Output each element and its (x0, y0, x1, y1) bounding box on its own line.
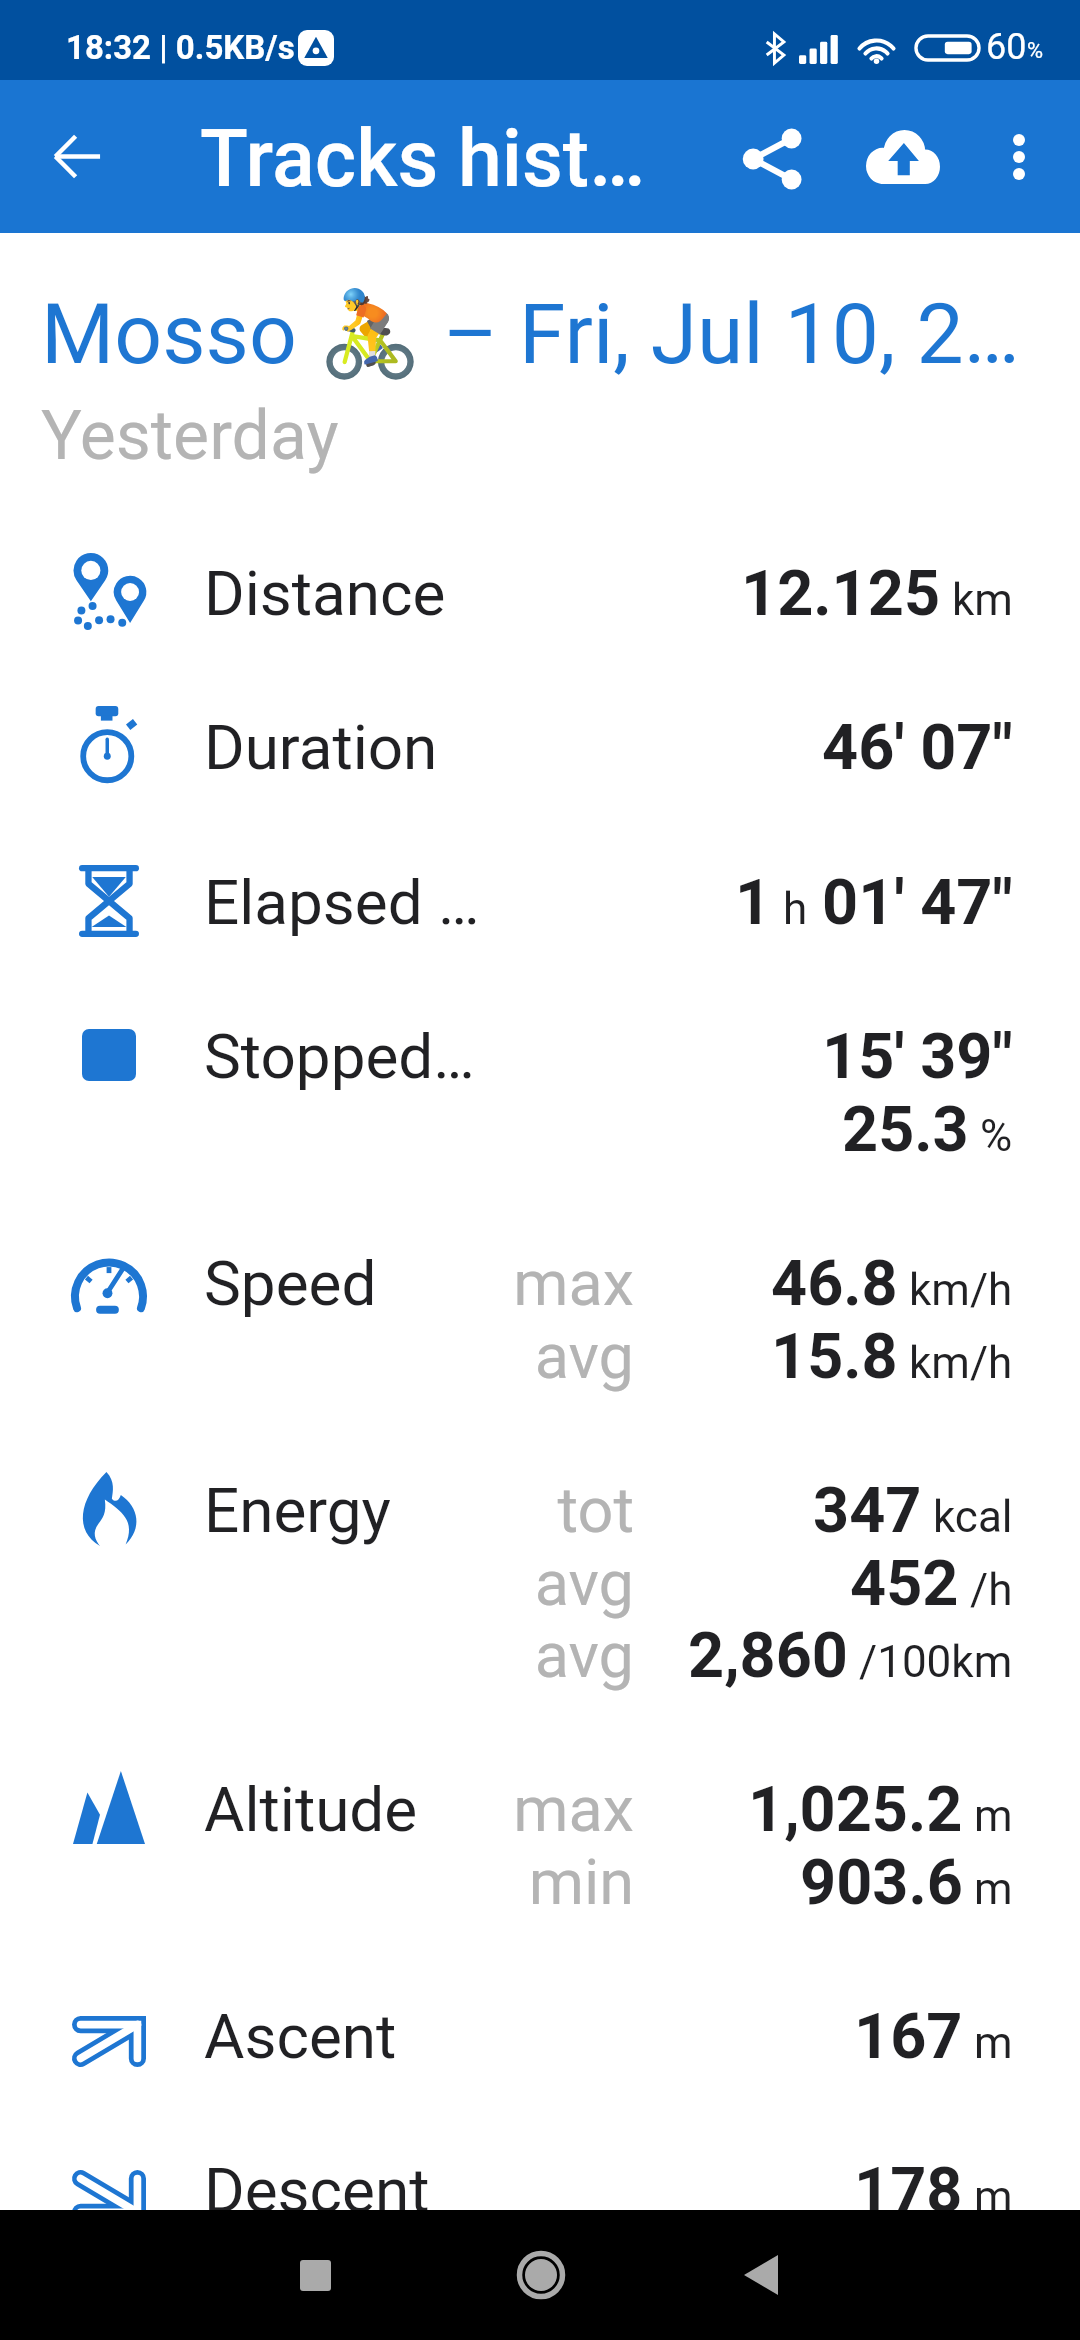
staticText: /100km (859, 1636, 1013, 1688)
button[interactable]: Elapsed … (0, 865, 1080, 1019)
staticText: km (952, 574, 1013, 626)
staticText: 12.125 (741, 557, 941, 631)
button[interactable]: Speed (0, 1246, 1080, 1473)
button[interactable]: Recent apps (240, 2225, 390, 2325)
staticText: 46.8 (771, 1247, 898, 1321)
staticText: m (974, 2171, 1013, 2223)
staticText: max (0, 1773, 634, 1847)
staticText: km/h (909, 1264, 1013, 1316)
staticText: 2,860 (688, 1619, 848, 1693)
staticText: Distance (204, 557, 446, 630)
staticText: Mosso 🚴 – Fri, Jul 10, 2… (41, 285, 1020, 383)
button[interactable]: Ascent (0, 1999, 1080, 2153)
staticText: % (1027, 38, 1044, 64)
button[interactable]: Distance (0, 556, 1080, 710)
button[interactable]: Navigate up (28, 107, 126, 205)
staticText: 01' 47" (822, 866, 1013, 940)
staticText: 167 (854, 2000, 963, 2074)
staticText: 15' 39" (822, 1020, 1013, 1094)
staticText: avg (0, 1320, 634, 1394)
staticText: 15.8 (771, 1320, 898, 1394)
staticText: 46' 07" (822, 711, 1013, 785)
button[interactable]: Back (686, 2225, 836, 2325)
button[interactable]: Share (724, 110, 822, 208)
staticText: Speed (204, 1247, 377, 1320)
staticText: Ascent (204, 2000, 397, 2073)
staticText: m (974, 1863, 1013, 1915)
staticText: 1 (735, 866, 772, 940)
staticText: avg (0, 1547, 634, 1621)
button[interactable]: More options (970, 108, 1068, 206)
button[interactable]: Stopped… (0, 1019, 1080, 1246)
staticText: avg (0, 1619, 634, 1693)
staticText: Duration (204, 711, 438, 784)
staticText: h (783, 883, 808, 935)
staticText: km/h (909, 1337, 1013, 1389)
staticText: min (0, 1846, 634, 1920)
staticText: m (974, 1790, 1013, 1842)
staticText: Descent (204, 2154, 430, 2227)
staticText: Elapsed … (204, 866, 480, 939)
staticText: Stopped… (204, 1020, 475, 1093)
staticText: 18:32 | 0.5KB/s (66, 28, 295, 67)
button[interactable]: Altitude (0, 1772, 1080, 1999)
staticText: max (0, 1247, 634, 1321)
staticText: Yesterday (41, 396, 339, 476)
staticText: 452 (850, 1547, 959, 1621)
staticText: 25.3 (842, 1093, 969, 1167)
staticText: 178 (854, 2154, 963, 2228)
staticText: Altitude (204, 1773, 418, 1846)
staticText: % (980, 1110, 1013, 1162)
button[interactable]: Home (466, 2225, 616, 2325)
staticText: 903.6 (800, 1846, 963, 1920)
staticText: Energy (204, 1474, 391, 1547)
button[interactable]: Energy (0, 1473, 1080, 1773)
staticText: kcal (933, 1491, 1013, 1543)
staticText: 347 (813, 1474, 922, 1548)
staticText: 1,025.2 (748, 1773, 963, 1847)
button[interactable]: Descent (0, 2153, 1080, 2307)
staticText: m (974, 2017, 1013, 2069)
staticText: tot (0, 1474, 634, 1548)
button[interactable]: Duration (0, 710, 1080, 864)
staticText: 60 (986, 26, 1027, 68)
button[interactable]: Upload to cloud (854, 108, 952, 206)
staticText: /h (970, 1564, 1013, 1616)
staticText: Tracks hist… (200, 113, 645, 206)
